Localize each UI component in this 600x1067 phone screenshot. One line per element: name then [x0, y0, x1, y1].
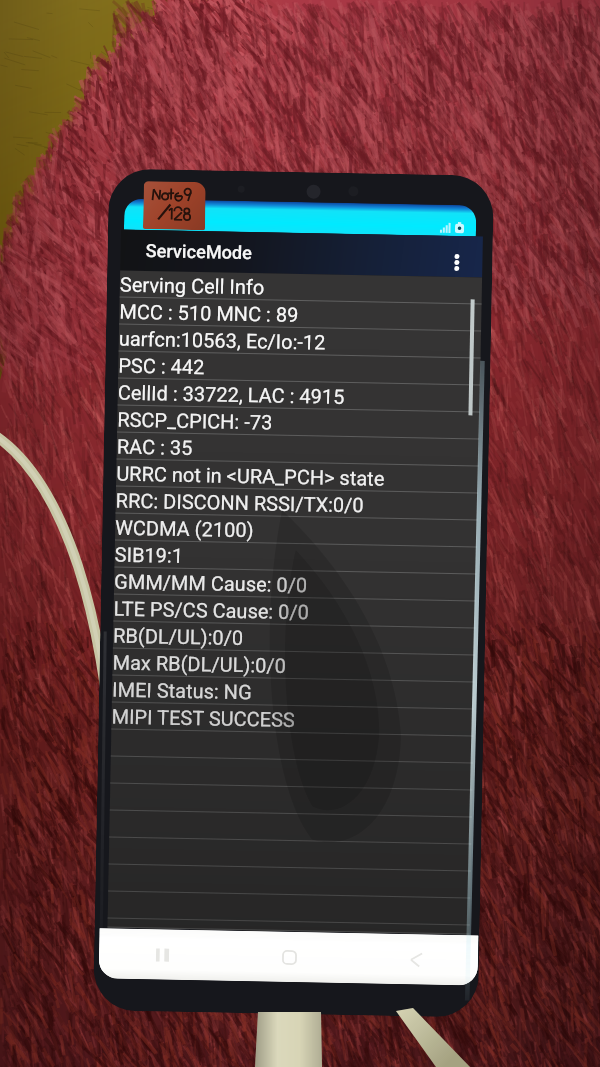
- button[interactable]: Max RB(DL/UL):0/0: [112, 648, 475, 682]
- button[interactable]: [107, 918, 470, 934]
- staticText: URRC not in <URA_PCH> state: [116, 462, 385, 490]
- button[interactable]: WCDMA (2100): [115, 514, 477, 547]
- staticText: Max RB(DL/UL):0/0: [112, 650, 287, 677]
- button[interactable]: More options: [441, 248, 472, 277]
- button[interactable]: [109, 837, 471, 871]
- button[interactable]: IMEI Status: NG: [112, 675, 474, 709]
- staticText: WCDMA (2100): [115, 516, 254, 541]
- staticText: SIB19:1: [114, 543, 184, 567]
- staticText: RRC: DISCONN RSSI/TX:0/0: [115, 489, 364, 516]
- staticText: CellId : 33722, LAC : 4915: [118, 381, 345, 408]
- button[interactable]: ServiceMode: [120, 230, 483, 277]
- staticText: MIPI TEST SUCCESS: [111, 704, 296, 731]
- button[interactable]: Home: [225, 931, 352, 983]
- button[interactable]: GMM/MM Cause: 0/0: [114, 568, 476, 601]
- staticText: RB(DL/UL):0/0: [113, 623, 244, 649]
- button[interactable]: Recents: [99, 928, 226, 981]
- staticText: RAC : 35: [117, 435, 193, 459]
- button[interactable]: [108, 864, 471, 898]
- button[interactable]: CellId : 33722, LAC : 4915: [118, 379, 480, 412]
- button[interactable]: RRC: DISCONN RSSI/TX:0/0: [115, 487, 478, 520]
- staticText: PSC : 442: [118, 354, 204, 378]
- staticText: GMM/MM Cause: 0/0: [114, 570, 308, 596]
- staticText: IMEI Status: NG: [112, 677, 252, 703]
- button[interactable]: [109, 810, 472, 844]
- staticText: ServiceMode: [145, 240, 253, 263]
- button[interactable]: URRC not in <URA_PCH> state: [116, 460, 478, 493]
- staticText: uarfcn:10563, Ec/Io:-12: [119, 327, 326, 354]
- staticText: RSCP_CPICH: -73: [117, 408, 273, 434]
- button[interactable]: RAC : 35: [116, 433, 479, 466]
- button[interactable]: uarfcn:10563, Ec/Io:-12: [119, 325, 481, 358]
- button[interactable]: SIB19:1: [114, 541, 477, 574]
- button[interactable]: [108, 891, 470, 925]
- button[interactable]: [110, 756, 473, 790]
- button[interactable]: MCC : 510 MNC : 89: [119, 298, 482, 331]
- button[interactable]: RSCP_CPICH: -73: [117, 406, 479, 439]
- staticText: Serving Cell Info: [120, 273, 265, 298]
- button[interactable]: MIPI TEST SUCCESS: [111, 702, 474, 736]
- button[interactable]: LTE PS/CS Cause: 0/0: [113, 595, 476, 628]
- button[interactable]: [110, 783, 472, 817]
- button[interactable]: Serving Cell Info: [120, 271, 482, 304]
- button[interactable]: RB(DL/UL):0/0: [113, 621, 475, 655]
- staticText: LTE PS/CS Cause: 0/0: [113, 597, 310, 623]
- button[interactable]: [111, 729, 473, 763]
- button[interactable]: PSC : 442: [118, 352, 481, 385]
- button[interactable]: Back: [351, 933, 478, 986]
- staticText: MCC : 510 MNC : 89: [119, 300, 299, 326]
